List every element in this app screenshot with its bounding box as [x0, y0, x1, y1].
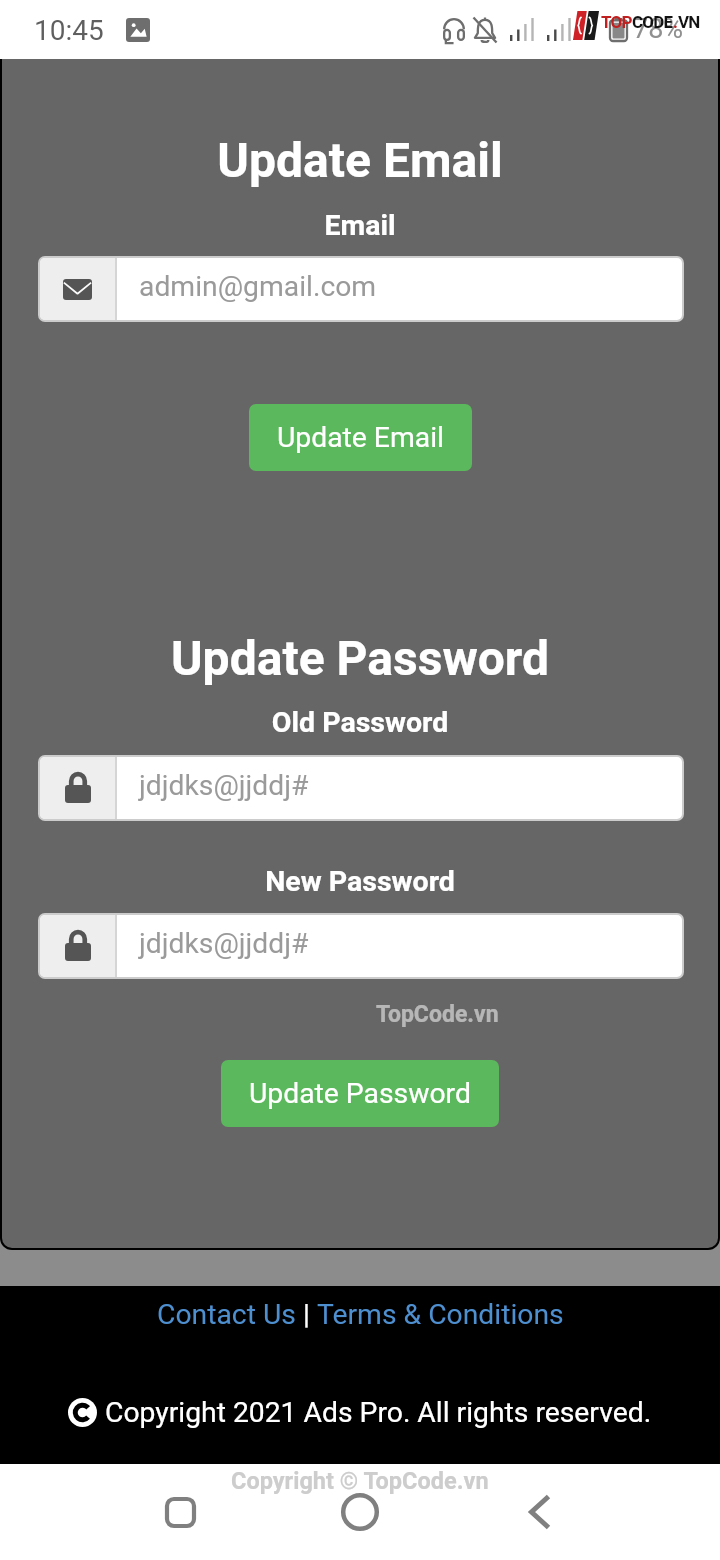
staticText: New Password: [2, 865, 718, 898]
staticText: Update Password: [2, 630, 718, 686]
staticText: |: [296, 1298, 317, 1331]
staticText: 10:45: [34, 14, 104, 47]
staticText: jdjdks@jjddj#: [139, 927, 309, 960]
button[interactable]: jdjdks@jjddj#: [38, 755, 684, 821]
staticText: Update Password: [249, 1077, 471, 1110]
staticText: 78%: [633, 13, 684, 45]
staticText: Copyright © TopCode.vn: [231, 1467, 489, 1495]
staticText: admin@gmail.com: [139, 270, 377, 303]
staticText: .: [673, 12, 678, 32]
button[interactable]: Back: [495, 1464, 585, 1560]
button[interactable]: admin@gmail.com: [38, 256, 684, 322]
staticText: VN: [678, 12, 700, 32]
staticText: Update Email: [2, 132, 718, 188]
staticText: TOP: [601, 12, 632, 32]
staticText: jdjdks@jjddj#: [139, 769, 309, 802]
button[interactable]: Update Email: [249, 404, 472, 471]
staticText: CODE: [632, 12, 673, 32]
staticText: TopCode.vn: [376, 1001, 499, 1028]
button[interactable]: Home: [315, 1464, 405, 1560]
staticText: Copyright 2021 Ads Pro. All rights reser…: [105, 1396, 652, 1429]
button[interactable]: Recent apps: [135, 1464, 225, 1560]
button[interactable]: Contact Us: [157, 1298, 296, 1331]
staticText: Email: [2, 209, 718, 242]
button[interactable]: Update Password: [221, 1060, 499, 1127]
button[interactable]: Terms & Conditions: [317, 1298, 564, 1331]
staticText: Update Email: [277, 421, 444, 454]
button[interactable]: jdjdks@jjddj#: [38, 913, 684, 979]
staticText: Old Password: [2, 706, 718, 739]
